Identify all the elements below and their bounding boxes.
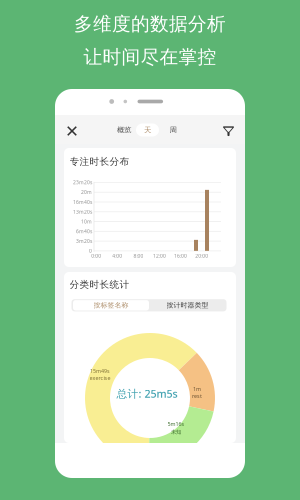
staticText: 天 bbox=[144, 125, 151, 135]
staticText: 按计时器类型 bbox=[166, 301, 208, 310]
button[interactable]: 按计时器类型 bbox=[149, 300, 225, 310]
staticText: 按标签名称 bbox=[93, 301, 128, 310]
button[interactable]: Close bbox=[61, 120, 83, 142]
staticText: 3m20s bbox=[76, 238, 92, 244]
staticText: 16m40s bbox=[73, 199, 92, 205]
staticText: 概览 bbox=[117, 125, 131, 135]
staticText: 16:00 bbox=[174, 252, 187, 259]
button[interactable]: 周 bbox=[162, 123, 184, 136]
staticText: 1m bbox=[193, 385, 201, 393]
staticText: 20:00 bbox=[195, 252, 208, 259]
staticText: 分类时长统计 bbox=[69, 278, 129, 291]
staticText: exercise bbox=[89, 374, 110, 382]
staticText: 6m40s bbox=[76, 228, 92, 235]
button[interactable]: 概览 bbox=[111, 123, 137, 136]
staticText: 总计: 25m5s bbox=[116, 386, 177, 401]
staticText: 多维度的数据分析 bbox=[74, 12, 226, 36]
staticText: 0:00 bbox=[91, 252, 101, 259]
button[interactable]: Filter bbox=[217, 120, 239, 142]
staticText: 20m bbox=[81, 189, 92, 195]
staticText: 4:00 bbox=[112, 252, 122, 259]
staticText: 12:00 bbox=[153, 252, 166, 259]
staticText: 让时间尽在掌控 bbox=[83, 45, 216, 69]
button[interactable]: 按标签名称 bbox=[73, 300, 149, 310]
staticText: 0 bbox=[89, 247, 92, 254]
staticText: 13m20s bbox=[73, 208, 92, 215]
staticText: rest bbox=[192, 392, 202, 400]
staticText: 周 bbox=[169, 125, 176, 135]
staticText: 5m16s bbox=[167, 420, 184, 428]
staticText: 15m49s bbox=[90, 367, 110, 375]
button[interactable]: 天 bbox=[136, 123, 159, 136]
staticText: 专注时长分布 bbox=[69, 156, 129, 168]
staticText: 未知 bbox=[171, 429, 181, 435]
staticText: 8:00 bbox=[133, 252, 143, 259]
staticText: 10m bbox=[81, 218, 92, 225]
staticText: 23m20s bbox=[73, 179, 92, 186]
